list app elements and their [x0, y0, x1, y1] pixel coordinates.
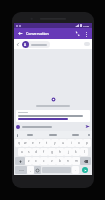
staticText: m	[75, 159, 78, 163]
button[interactable]: v	[48, 157, 56, 165]
button[interactable]: Send message	[82, 167, 88, 173]
button[interactable]: r	[36, 139, 43, 147]
staticText: s	[28, 150, 30, 154]
button[interactable]: u	[59, 139, 67, 147]
button[interactable]: a	[18, 148, 25, 156]
button[interactable]: e	[29, 139, 36, 147]
staticText: 12:30	[83, 24, 90, 27]
staticText: p	[86, 141, 88, 145]
staticText: ?123	[19, 169, 24, 172]
other: Attach	[16, 42, 20, 46]
staticText: e	[32, 141, 34, 145]
button[interactable]: Send	[85, 124, 90, 129]
button[interactable]: Settings	[87, 133, 91, 137]
staticText: g	[51, 150, 53, 154]
button[interactable]: Symbols	[15, 166, 27, 174]
staticText: h	[59, 150, 61, 154]
button[interactable]: i	[67, 139, 75, 147]
staticText: l	[84, 150, 85, 154]
button[interactable]: Call	[73, 29, 82, 38]
button[interactable]: Attach	[16, 39, 90, 49]
staticText: x	[35, 159, 37, 163]
staticText: w	[24, 141, 27, 145]
button[interactable]: y	[51, 139, 59, 147]
staticText: d	[35, 150, 37, 154]
staticText: q	[18, 141, 20, 145]
button[interactable]: Conversation	[26, 31, 73, 36]
staticText: j	[68, 150, 69, 154]
button[interactable]: b	[56, 157, 64, 165]
button[interactable]: A	[22, 41, 47, 48]
button[interactable]: Expand recipients	[84, 42, 90, 46]
button[interactable]: m	[72, 157, 80, 165]
staticText: t	[46, 141, 48, 145]
button[interactable]: k	[72, 148, 80, 156]
staticText: n	[67, 159, 69, 163]
button[interactable]: Back	[16, 29, 25, 38]
button[interactable]: t	[43, 139, 51, 147]
staticText: i	[71, 141, 72, 145]
staticText: A	[24, 43, 27, 47]
button[interactable]: .	[72, 166, 79, 174]
button[interactable]: n	[64, 157, 72, 165]
button[interactable]: Backspace	[80, 157, 91, 165]
button[interactable]: z	[25, 157, 32, 165]
button[interactable]: l	[80, 148, 88, 156]
button[interactable]: Voice input	[15, 133, 19, 137]
button[interactable]: ,	[27, 166, 34, 174]
button[interactable]: Shift	[15, 157, 25, 165]
button[interactable]	[19, 134, 41, 136]
button[interactable]: f	[40, 148, 48, 156]
button[interactable]: c	[40, 157, 48, 165]
button[interactable]: h	[56, 148, 64, 156]
button[interactable]	[18, 112, 88, 120]
staticText: v	[51, 159, 53, 163]
staticText: a	[21, 150, 23, 154]
button[interactable]: s	[25, 148, 32, 156]
button[interactable]: x	[32, 157, 40, 165]
staticText: f	[43, 150, 45, 154]
staticText: ,	[30, 168, 31, 172]
staticText: y	[54, 141, 56, 145]
button[interactable]: p	[83, 139, 91, 147]
staticText: o	[78, 141, 80, 145]
button[interactable]	[64, 134, 87, 136]
staticText: r	[39, 141, 41, 145]
button[interactable]	[41, 134, 64, 136]
button[interactable]: q	[15, 139, 22, 147]
staticText: k	[75, 150, 77, 154]
button[interactable]: Emoji	[34, 166, 41, 174]
button[interactable]: g	[48, 148, 56, 156]
staticText: b	[59, 159, 61, 163]
button[interactable]: j	[64, 148, 72, 156]
staticText: z	[28, 159, 30, 163]
button[interactable]: o	[75, 139, 83, 147]
button[interactable]: d	[32, 148, 40, 156]
staticText: c	[43, 159, 45, 163]
staticText: u	[62, 141, 64, 145]
staticText: Conversation	[26, 31, 49, 36]
button[interactable]: More options	[82, 30, 90, 38]
button[interactable]: w	[22, 139, 29, 147]
staticText: .	[75, 168, 76, 172]
